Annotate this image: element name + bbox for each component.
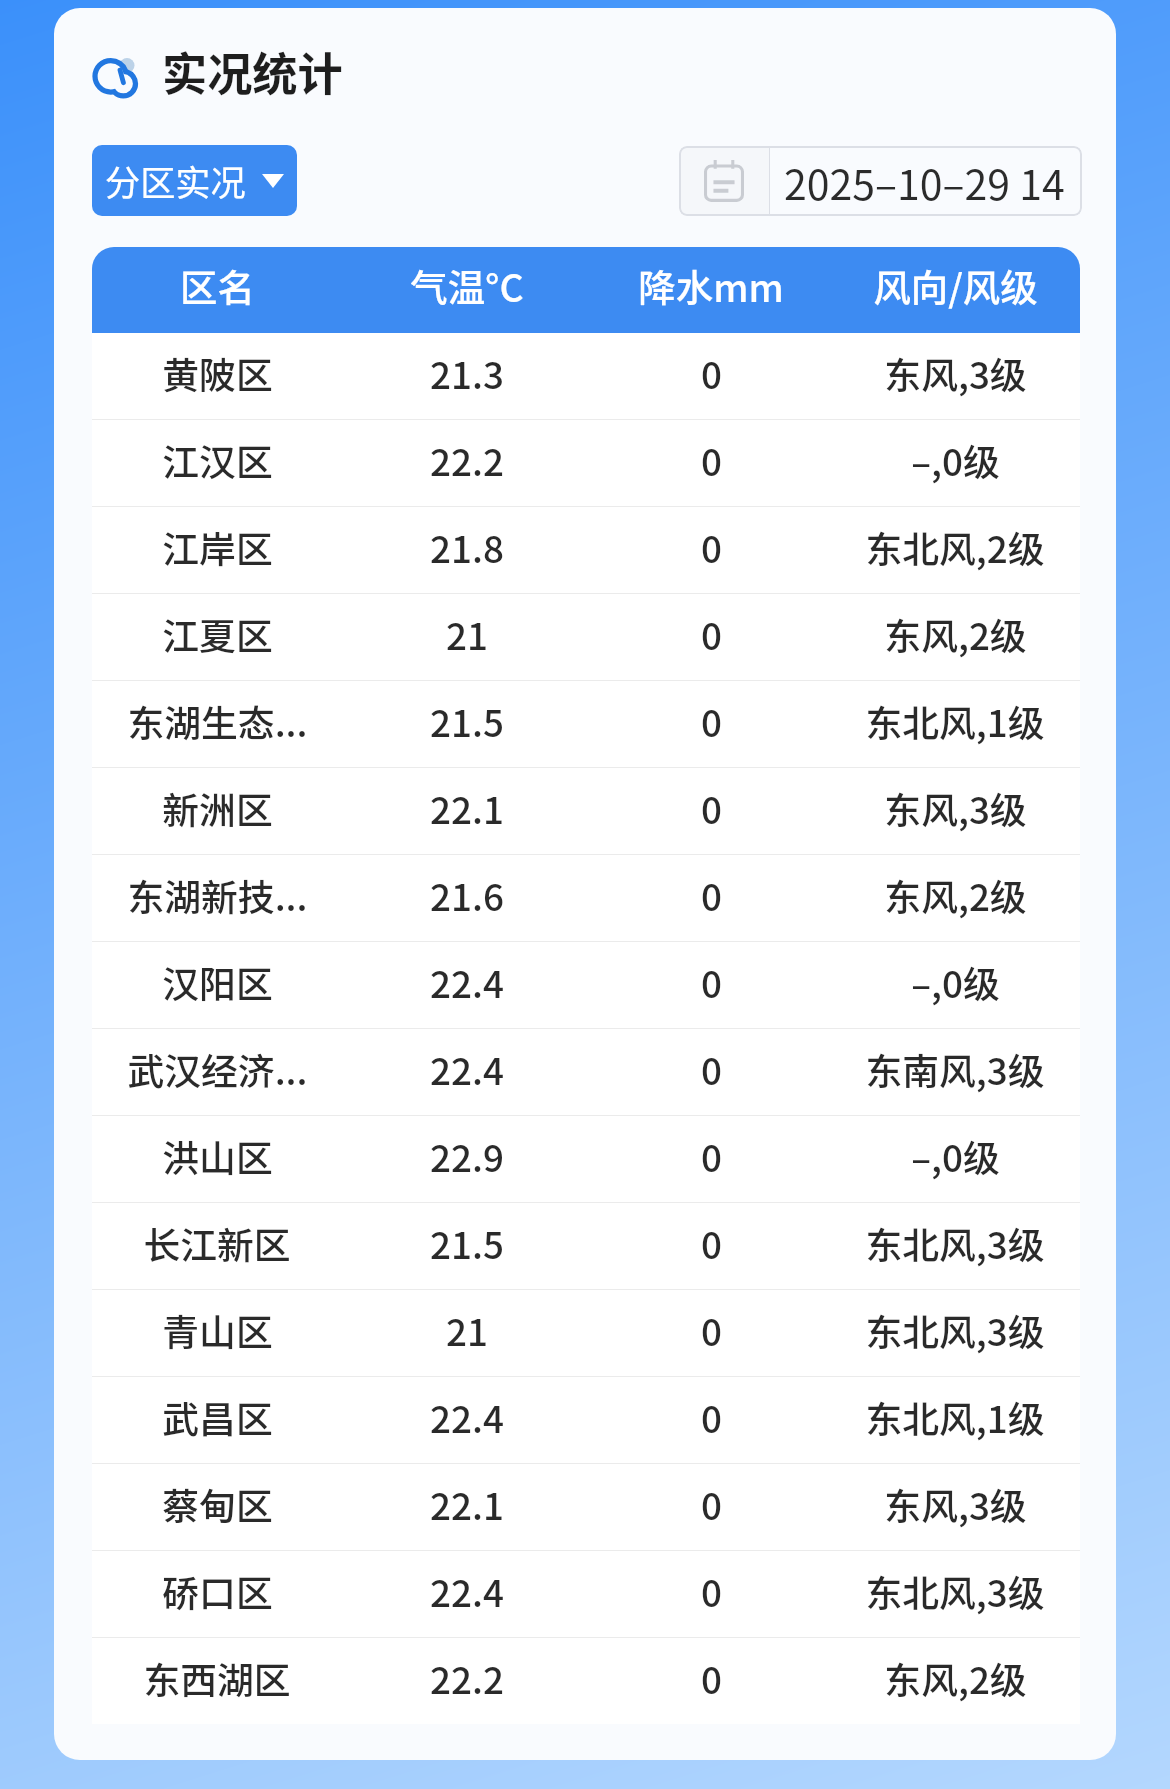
staticText: 东北风,2级 xyxy=(865,520,1045,573)
staticText: 东北风,3级 xyxy=(865,1564,1045,1617)
staticText: 新洲区 xyxy=(162,781,273,834)
staticText: 21.5 xyxy=(430,1216,504,1269)
staticText: 0 xyxy=(701,1216,722,1269)
button[interactable]: 长江新区 xyxy=(92,1203,1080,1289)
staticText: 0 xyxy=(701,520,722,573)
staticText: 22.4 xyxy=(430,955,504,1008)
staticText: 东风,3级 xyxy=(884,346,1027,399)
staticText: 22.1 xyxy=(430,781,504,834)
staticText: 东南风,3级 xyxy=(865,1042,1045,1095)
staticText: 东北风,1级 xyxy=(865,694,1045,747)
staticText: 21.5 xyxy=(430,694,504,747)
staticText: 22.9 xyxy=(430,1129,504,1182)
staticText: 东湖新技... xyxy=(127,868,308,921)
staticText: 东北风,3级 xyxy=(865,1216,1045,1269)
staticText: 21.6 xyxy=(430,868,504,921)
staticText: 实况统计 xyxy=(162,39,343,103)
staticText: 东风,3级 xyxy=(884,781,1027,834)
staticText: 21.8 xyxy=(430,520,504,573)
button[interactable]: 新洲区 xyxy=(92,768,1080,854)
staticText: 武昌区 xyxy=(162,1390,273,1443)
staticText: –,0级 xyxy=(911,433,1000,486)
button[interactable]: 江汉区 xyxy=(92,420,1080,506)
staticText: 东北风,3级 xyxy=(865,1303,1045,1356)
button[interactable]: 东湖生态... xyxy=(92,681,1080,767)
staticText: 22.1 xyxy=(430,1477,504,1530)
staticText: 黄陂区 xyxy=(162,346,273,399)
staticText: 22.2 xyxy=(430,433,504,486)
staticText: 江汉区 xyxy=(162,433,273,486)
staticText: 青山区 xyxy=(162,1303,273,1356)
staticText: 武汉经济... xyxy=(127,1042,308,1095)
staticText: 汉阳区 xyxy=(162,955,273,1008)
button[interactable]: 武昌区 xyxy=(92,1377,1080,1463)
staticText: 22.4 xyxy=(430,1564,504,1617)
staticText: 东风,3级 xyxy=(884,1477,1027,1530)
staticText: 东西湖区 xyxy=(143,1651,291,1704)
staticText: 22.2 xyxy=(430,1651,504,1704)
staticText: –,0级 xyxy=(911,1129,1000,1182)
staticText: 区名 xyxy=(180,259,255,313)
staticText: 洪山区 xyxy=(162,1129,273,1182)
staticText: 21 xyxy=(446,607,488,660)
button[interactable]: 硚口区 xyxy=(92,1551,1080,1637)
staticText: 0 xyxy=(701,1477,722,1530)
staticText: 0 xyxy=(701,868,722,921)
staticText: 21 xyxy=(446,1303,488,1356)
staticText: 0 xyxy=(701,433,722,486)
staticText: 气温°C xyxy=(410,259,524,313)
staticText: 0 xyxy=(701,346,722,399)
button[interactable]: 黄陂区 xyxy=(92,333,1080,419)
staticText: 分区实况 xyxy=(105,155,246,206)
staticText: –,0级 xyxy=(911,955,1000,1008)
button[interactable]: 东湖新技... xyxy=(92,855,1080,941)
staticText: 江岸区 xyxy=(162,520,273,573)
staticText: 降水mm xyxy=(638,259,784,313)
staticText: 东北风,1级 xyxy=(865,1390,1045,1443)
staticText: 风向/风级 xyxy=(873,259,1038,313)
staticText: 22.4 xyxy=(430,1042,504,1095)
button[interactable]: 汉阳区 xyxy=(92,942,1080,1028)
staticText: 硚口区 xyxy=(162,1564,273,1617)
staticText: 东风,2级 xyxy=(884,868,1027,921)
staticText: 0 xyxy=(701,781,722,834)
staticText: 0 xyxy=(701,1390,722,1443)
button[interactable]: 武汉经济... xyxy=(92,1029,1080,1115)
button[interactable]: 江岸区 xyxy=(92,507,1080,593)
staticText: 21.3 xyxy=(430,346,504,399)
button[interactable]: Pick date xyxy=(679,146,1082,216)
staticText: 22.4 xyxy=(430,1390,504,1443)
staticText: 0 xyxy=(701,694,722,747)
staticText: 0 xyxy=(701,1303,722,1356)
button[interactable]: 分区实况 xyxy=(92,145,297,216)
staticText: 蔡甸区 xyxy=(162,1477,273,1530)
button[interactable]: 青山区 xyxy=(92,1290,1080,1376)
staticText: 0 xyxy=(701,1042,722,1095)
button[interactable]: 蔡甸区 xyxy=(92,1464,1080,1550)
staticText: 长江新区 xyxy=(143,1216,291,1269)
button[interactable]: 东西湖区 xyxy=(92,1638,1080,1724)
staticText: 0 xyxy=(701,1651,722,1704)
staticText: 0 xyxy=(701,1129,722,1182)
staticText: 东风,2级 xyxy=(884,1651,1027,1704)
staticText: 0 xyxy=(701,955,722,1008)
other: Pick date xyxy=(702,159,746,203)
staticText: 江夏区 xyxy=(162,607,273,660)
staticText: 0 xyxy=(701,1564,722,1617)
other: Weather xyxy=(92,54,142,103)
staticText: 东湖生态... xyxy=(127,694,308,747)
button[interactable]: 江夏区 xyxy=(92,594,1080,680)
staticText: 0 xyxy=(701,607,722,660)
staticText: 2025–10–29 14 xyxy=(784,152,1065,211)
staticText: 东风,2级 xyxy=(884,607,1027,660)
button[interactable]: 洪山区 xyxy=(92,1116,1080,1202)
